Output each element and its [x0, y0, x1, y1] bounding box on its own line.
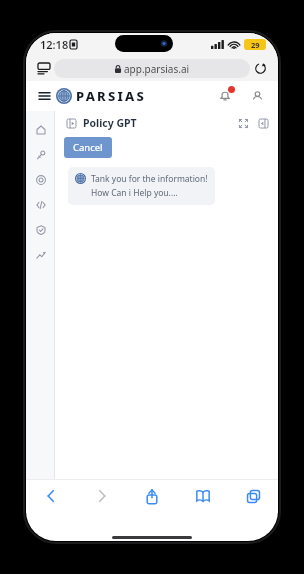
staticText: Tank you for the information! — [91, 173, 208, 185]
button[interactable]: Tank you for the information! — [68, 167, 215, 205]
button[interactable]: Share — [141, 485, 163, 507]
button[interactable]: Home — [32, 121, 50, 139]
button[interactable]: Search — [32, 171, 50, 189]
button[interactable]: Cancel — [64, 137, 112, 158]
button[interactable]: Panel — [64, 116, 78, 130]
button[interactable]: Bookmarks — [192, 485, 214, 507]
button[interactable]: Forward — [91, 485, 113, 507]
staticText: Policy GPT — [83, 116, 137, 130]
button[interactable]: Security — [32, 221, 50, 239]
staticText: 12:18 — [40, 37, 69, 52]
button[interactable]: Back — [40, 485, 62, 507]
button[interactable]: Notifications — [216, 87, 234, 105]
button[interactable]: app.parsias.ai — [54, 59, 250, 78]
button[interactable]: Tabs — [242, 485, 264, 507]
button[interactable]: Code — [32, 196, 50, 214]
button[interactable]: Page settings — [35, 59, 53, 77]
staticText: 29 — [251, 40, 260, 50]
staticText: Cancel — [73, 141, 103, 154]
button[interactable]: Keys — [32, 146, 50, 164]
button[interactable]: Menu — [36, 88, 52, 104]
staticText: app.parsias.ai — [124, 62, 190, 76]
button[interactable]: Reload — [251, 59, 269, 77]
button[interactable]: Toggle sidebar — [256, 116, 270, 130]
button[interactable]: Analytics — [32, 246, 50, 264]
button[interactable]: Expand — [236, 116, 250, 130]
button[interactable]: Account — [248, 87, 266, 105]
staticText: How Can i Help you.... — [91, 187, 178, 199]
staticText: PARSIAS — [76, 87, 146, 105]
